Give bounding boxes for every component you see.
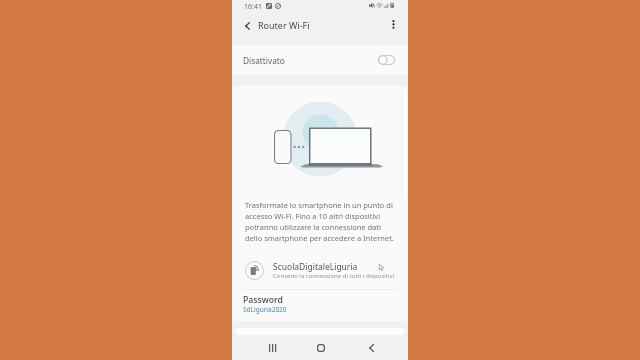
button[interactable]: ScuolaDigitaleLiguria xyxy=(232,251,408,289)
staticText: Trasformate lo smartphone in un punto di… xyxy=(245,200,397,243)
staticText: Password xyxy=(243,294,283,306)
staticText: 16:41 xyxy=(244,2,262,12)
staticText: SdLiguria2020 xyxy=(243,305,287,314)
button[interactable]: Back xyxy=(360,337,382,359)
staticText: ScuolaDigitaleLiguria xyxy=(273,261,358,273)
staticText: Router Wi-Fi xyxy=(258,19,310,31)
staticText: Consenti la connessione di tutti i dispo… xyxy=(273,272,396,280)
button[interactable]: Password xyxy=(232,290,408,321)
button[interactable]: Disattivato xyxy=(232,45,408,75)
button[interactable]: Home xyxy=(310,337,332,359)
button[interactable]: Recent apps xyxy=(261,337,283,359)
button[interactable]: More options xyxy=(386,17,400,31)
staticText: Disattivato xyxy=(243,55,285,66)
button[interactable]: Back xyxy=(240,19,254,33)
